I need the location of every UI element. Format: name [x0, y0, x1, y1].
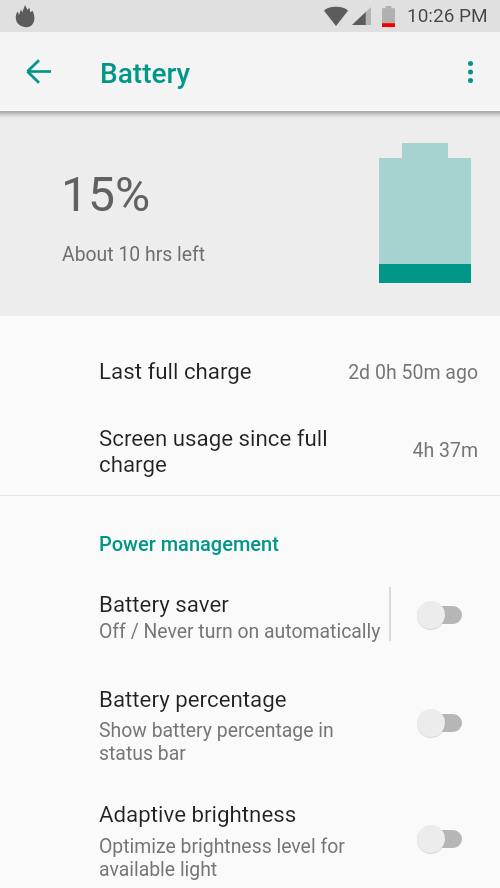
staticText: Last full charge — [99, 358, 252, 384]
staticText: Optimize brightness level for available … — [99, 835, 345, 881]
button[interactable]: Back — [14, 47, 62, 95]
button[interactable] — [0, 672, 500, 772]
staticText: Adaptive brightness — [99, 801, 297, 827]
staticText: 10:26 PM — [407, 4, 488, 26]
button[interactable] — [0, 788, 500, 888]
button[interactable] — [0, 578, 500, 652]
staticText: 2d 0h 50m ago — [0, 361, 478, 384]
staticText: Battery — [100, 57, 191, 90]
staticText: Battery saver — [99, 591, 229, 617]
button[interactable]: Adaptive brightness — [405, 815, 475, 863]
staticText: Screen usage since full charge — [99, 425, 328, 477]
staticText: Battery percentage — [99, 686, 287, 712]
staticText: 4h 37m — [0, 439, 478, 462]
staticText: Power management — [99, 532, 279, 555]
button[interactable]: More options — [446, 48, 494, 96]
staticText: 15% — [61, 166, 151, 222]
staticText: About 10 hrs left — [62, 243, 206, 266]
staticText: Off / Never turn on automatically — [99, 620, 381, 643]
staticText: Show battery percentage in status bar — [99, 719, 334, 765]
button[interactable]: Battery percentage — [405, 699, 475, 747]
button[interactable]: Battery saver — [405, 591, 475, 639]
button[interactable] — [0, 402, 500, 492]
button[interactable] — [0, 316, 500, 378]
